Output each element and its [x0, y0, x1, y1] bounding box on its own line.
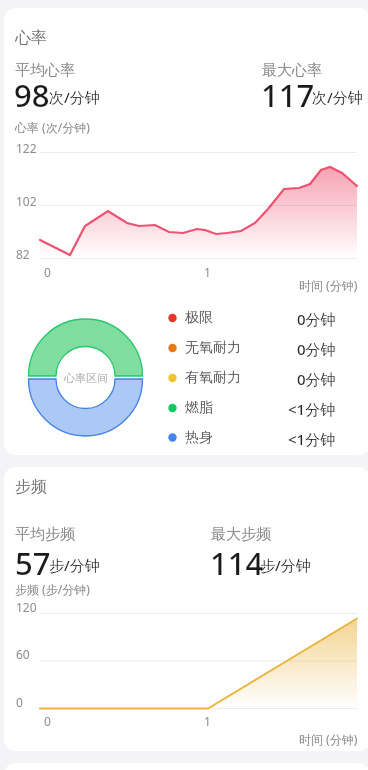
- staticText: 0分钟: [297, 339, 336, 359]
- staticText: 心率 (次/分钟): [15, 119, 90, 135]
- staticText: 极限: [185, 309, 213, 327]
- staticText: 114: [210, 542, 264, 584]
- staticText: 步频: [15, 477, 47, 497]
- staticText: 最大步频: [211, 525, 271, 544]
- staticText: 82: [16, 246, 30, 262]
- staticText: 时间 (分钟): [299, 731, 358, 747]
- staticText: <1分钟: [288, 429, 336, 449]
- staticText: 60: [16, 646, 30, 662]
- staticText: 122: [16, 140, 37, 156]
- staticText: 平均心率: [15, 61, 75, 80]
- staticText: 1: [204, 713, 211, 729]
- staticText: 120: [16, 599, 37, 615]
- staticText: 0: [44, 264, 51, 280]
- staticText: 步/分钟: [260, 555, 311, 575]
- staticText: 次/分钟: [312, 87, 363, 107]
- staticText: 时间 (分钟): [299, 277, 358, 293]
- staticText: 燃脂: [185, 399, 213, 417]
- button[interactable]: 有氧耐力: [185, 369, 336, 389]
- staticText: 步/分钟: [49, 555, 100, 575]
- button[interactable]: 燃脂: [185, 399, 336, 419]
- staticText: 热身: [185, 429, 213, 447]
- button[interactable]: 热身: [185, 429, 336, 449]
- staticText: 57: [15, 542, 51, 584]
- staticText: 0分钟: [297, 369, 336, 389]
- button[interactable]: [4, 8, 368, 455]
- staticText: 102: [16, 193, 37, 209]
- staticText: 最大心率: [262, 61, 322, 80]
- button[interactable]: 极限: [185, 309, 336, 329]
- staticText: 平均步频: [15, 525, 75, 544]
- staticText: 0: [44, 713, 51, 729]
- staticText: 0分钟: [297, 309, 336, 329]
- staticText: 98: [14, 74, 50, 116]
- staticText: 0: [16, 694, 23, 710]
- staticText: 步频 (步/分钟): [15, 581, 90, 597]
- staticText: 无氧耐力: [185, 339, 241, 357]
- staticText: 次/分钟: [49, 87, 100, 107]
- staticText: 1: [204, 264, 211, 280]
- button[interactable]: [4, 467, 368, 751]
- staticText: 有氧耐力: [185, 369, 241, 387]
- staticText: <1分钟: [288, 399, 336, 419]
- button[interactable]: 无氧耐力: [185, 339, 336, 359]
- staticText: 心率: [15, 28, 47, 48]
- staticText: 117: [261, 74, 315, 116]
- staticText: 心率区间: [64, 371, 108, 385]
